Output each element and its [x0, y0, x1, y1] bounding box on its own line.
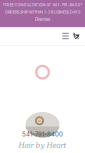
button[interactable]: Cart — [71, 27, 82, 45]
staticText: Hair by Heart — [18, 141, 66, 149]
staticText: ORDERS SHIP WITHIN 1-3 BUSINESS DAYS — [5, 10, 80, 14]
button[interactable]: *FREE CONSULTATION AT 541-791-8400* — [0, 0, 85, 27]
staticText: *FREE CONSULTATION AT 541-791-8400* — [2, 2, 82, 7]
button[interactable]: Menu — [60, 27, 71, 45]
staticText: 541-791-8400 — [22, 130, 63, 138]
button[interactable]: 541-791-8400 — [22, 130, 63, 138]
staticText: Dismiss — [35, 17, 50, 22]
